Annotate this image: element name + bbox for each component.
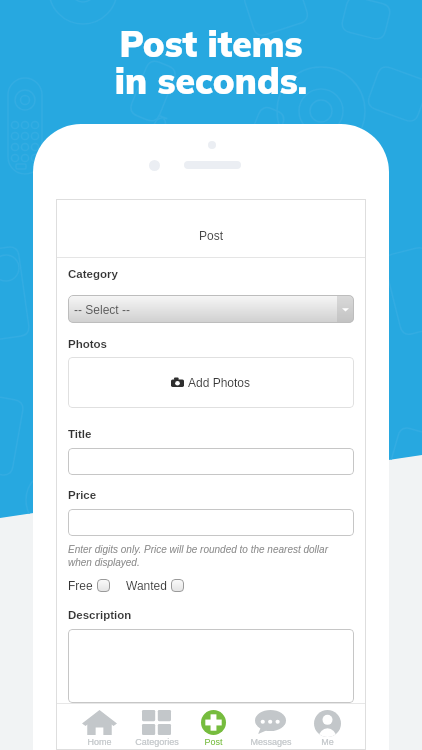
staticText: Add Photos — [188, 376, 251, 389]
staticText: Post — [199, 229, 224, 242]
button[interactable]: Add Photos — [68, 357, 354, 408]
staticText: Free — [68, 579, 93, 592]
staticText: Post items in seconds. — [0, 21, 422, 103]
button[interactable]: Wanted — [126, 579, 184, 592]
button[interactable]: Home — [71, 704, 128, 747]
staticText: Post — [204, 737, 223, 747]
button[interactable]: Me — [299, 704, 356, 747]
button[interactable]: Free — [68, 579, 110, 592]
button[interactable]: Categories — [128, 704, 185, 747]
staticText: Categories — [135, 737, 179, 747]
button[interactable] — [68, 629, 354, 703]
button[interactable]: Post — [185, 704, 242, 747]
staticText: Photos — [68, 338, 107, 351]
staticText: Price — [68, 489, 97, 502]
staticText: -- Select -- — [74, 303, 131, 316]
button[interactable] — [68, 448, 354, 475]
staticText: Home — [87, 737, 112, 747]
staticText: Category — [68, 268, 118, 281]
staticText: Me — [321, 737, 334, 747]
staticText: Enter digits only. Price will be rounded… — [68, 544, 354, 569]
staticText: Title — [68, 428, 92, 441]
staticText: Wanted — [126, 579, 167, 592]
button[interactable]: -- Select -- — [68, 295, 354, 323]
button[interactable]: Messages — [242, 704, 299, 747]
staticText: Messages — [250, 737, 292, 747]
staticText: Description — [68, 609, 132, 622]
button[interactable] — [68, 509, 354, 536]
